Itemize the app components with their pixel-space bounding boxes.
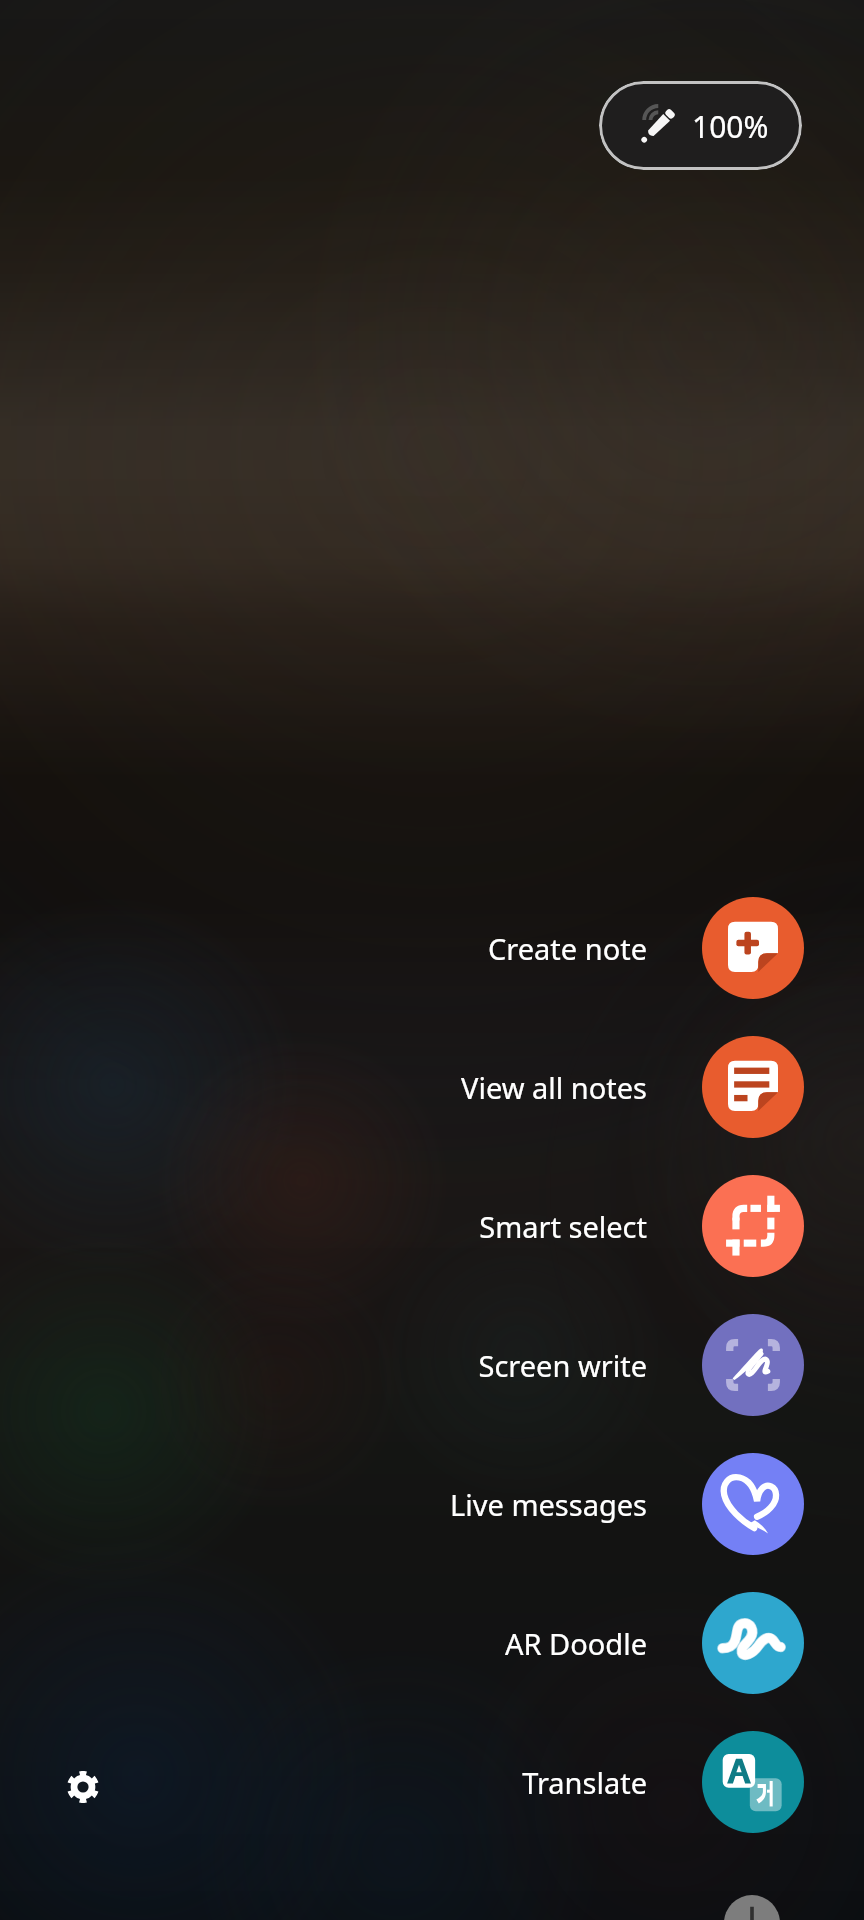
staticText: Screen write bbox=[478, 1346, 647, 1385]
button[interactable]: Smart select bbox=[330, 1168, 804, 1284]
button[interactable]: View all notes bbox=[330, 1029, 804, 1145]
staticText: Smart select bbox=[479, 1207, 647, 1246]
button[interactable]: Close bbox=[724, 1895, 780, 1920]
button[interactable]: AR Doodle bbox=[330, 1585, 804, 1701]
button[interactable]: Screen write bbox=[330, 1307, 804, 1423]
staticText: Live messages bbox=[450, 1485, 647, 1524]
staticText: Translate bbox=[522, 1763, 647, 1802]
staticText: AR Doodle bbox=[504, 1624, 647, 1663]
button[interactable]: Translate bbox=[330, 1724, 804, 1840]
staticText: Create note bbox=[487, 929, 647, 968]
button[interactable]: 100% bbox=[599, 81, 802, 170]
staticText: 100% bbox=[692, 106, 769, 147]
button[interactable]: Live messages bbox=[330, 1446, 804, 1562]
button[interactable]: Settings bbox=[39, 1743, 127, 1831]
button[interactable]: Create note bbox=[330, 890, 804, 1006]
staticText: View all notes bbox=[461, 1068, 647, 1107]
